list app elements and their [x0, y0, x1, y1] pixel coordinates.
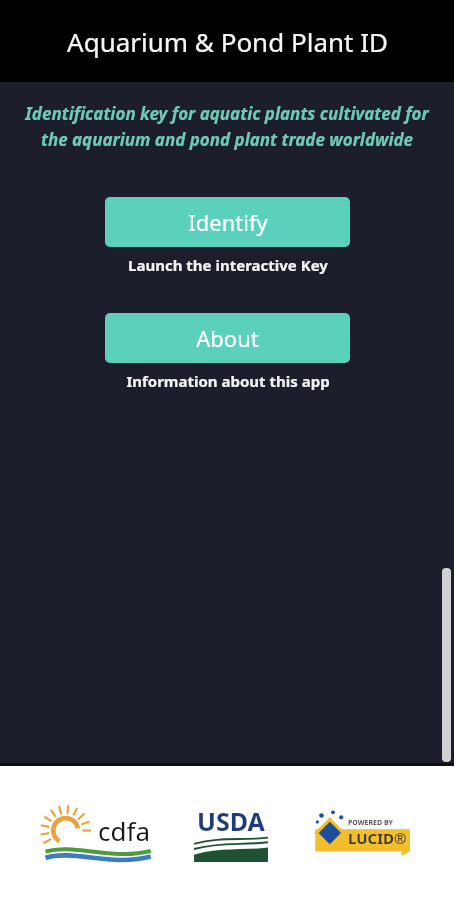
staticText: Identify [188, 207, 268, 237]
other: CDFA logo [41, 802, 153, 864]
staticText: cdfa [98, 813, 151, 848]
staticText: Information about this app [126, 371, 330, 391]
staticText: USDA [197, 804, 265, 838]
staticText: POWERED BY [348, 818, 393, 828]
other: Powered by Lucid logo [309, 810, 413, 856]
button[interactable]: About [105, 313, 350, 363]
staticText: LUCID® [348, 828, 407, 848]
staticText: Identification key for aquatic plants cu… [16, 102, 438, 151]
button[interactable]: Identify [105, 197, 350, 247]
staticText: Aquarium & Pond Plant ID [67, 24, 388, 59]
staticText: About [196, 323, 259, 353]
staticText: Launch the interactive Key [128, 255, 328, 275]
other: USDA logo [194, 804, 268, 862]
